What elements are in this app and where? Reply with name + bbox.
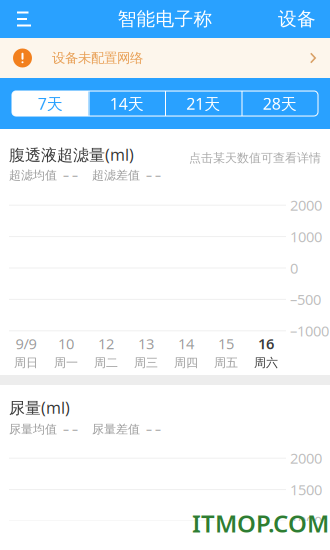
staticText: 超滤均值: [9, 168, 57, 182]
staticText: 周三: [134, 355, 158, 370]
staticText: 9/9: [15, 334, 36, 353]
staticText: 2000: [290, 195, 322, 215]
staticText: 尿量均值: [9, 422, 57, 436]
staticText: 周四: [174, 355, 198, 370]
staticText: 周五: [214, 355, 238, 370]
staticText: 1000: [290, 511, 322, 531]
button[interactable]: 设备未配置网络: [0, 38, 330, 78]
staticText: – –: [146, 421, 161, 437]
staticText: 2000: [290, 448, 322, 468]
staticText: 10: [58, 334, 74, 353]
staticText: 点击某天数值可查看详情: [189, 150, 321, 165]
button[interactable]: 21天: [165, 91, 241, 116]
staticText: 13: [138, 334, 154, 353]
staticText: 智能电子称: [117, 7, 212, 30]
staticText: 周日: [14, 355, 38, 370]
button[interactable]: 设备: [264, 0, 330, 38]
staticText: 周六: [254, 355, 278, 370]
staticText: 周一: [54, 355, 78, 370]
staticText: 21天: [186, 93, 220, 114]
staticText: 0: [290, 258, 298, 278]
button[interactable]: Menu: [0, 0, 46, 38]
staticText: –1000: [290, 321, 329, 340]
staticText: –500: [290, 290, 321, 309]
staticText: 7天: [38, 93, 63, 114]
button[interactable]: 28天: [241, 91, 318, 116]
button[interactable]: 14天: [88, 91, 165, 116]
staticText: – –: [63, 167, 78, 183]
staticText: 15: [218, 334, 234, 353]
staticText: 12: [98, 334, 114, 353]
staticText: ITMOP.COM: [192, 507, 329, 539]
staticText: – –: [146, 167, 161, 183]
staticText: 1500: [290, 480, 322, 499]
staticText: 14天: [110, 93, 144, 114]
staticText: – –: [63, 421, 78, 437]
button[interactable]: 7天: [12, 91, 88, 116]
staticText: 尿量(ml): [9, 397, 70, 418]
staticText: 设备: [278, 7, 316, 30]
staticText: 超滤差值: [92, 168, 140, 182]
staticText: 14: [178, 334, 194, 353]
staticText: 设备未配置网络: [52, 50, 143, 66]
staticText: 28天: [263, 93, 297, 114]
staticText: 尿量差值: [92, 422, 140, 436]
staticText: 16: [258, 334, 274, 353]
staticText: 1000: [290, 227, 322, 246]
staticText: 周二: [94, 355, 118, 370]
staticText: 腹透液超滤量(ml): [9, 144, 134, 165]
